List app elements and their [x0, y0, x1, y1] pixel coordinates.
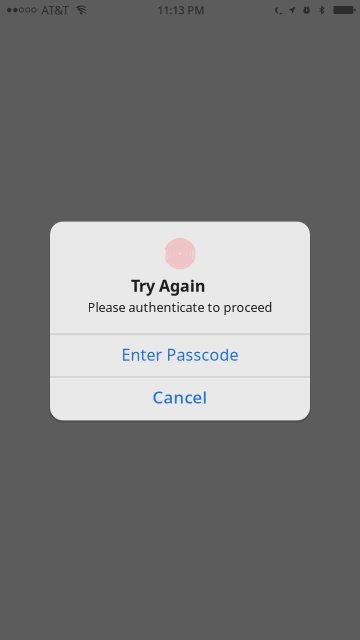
staticText: Enter Passcode [121, 344, 238, 365]
button[interactable]: Cancel [50, 377, 310, 420]
button[interactable]: Enter Passcode [50, 334, 310, 376]
staticText: Cancel [152, 385, 207, 408]
staticText: AT&T [41, 2, 69, 18]
staticText: 11:13 PM [157, 2, 204, 18]
staticText: Please authenticate to proceed [87, 298, 272, 316]
staticText: Try Again [131, 275, 205, 296]
